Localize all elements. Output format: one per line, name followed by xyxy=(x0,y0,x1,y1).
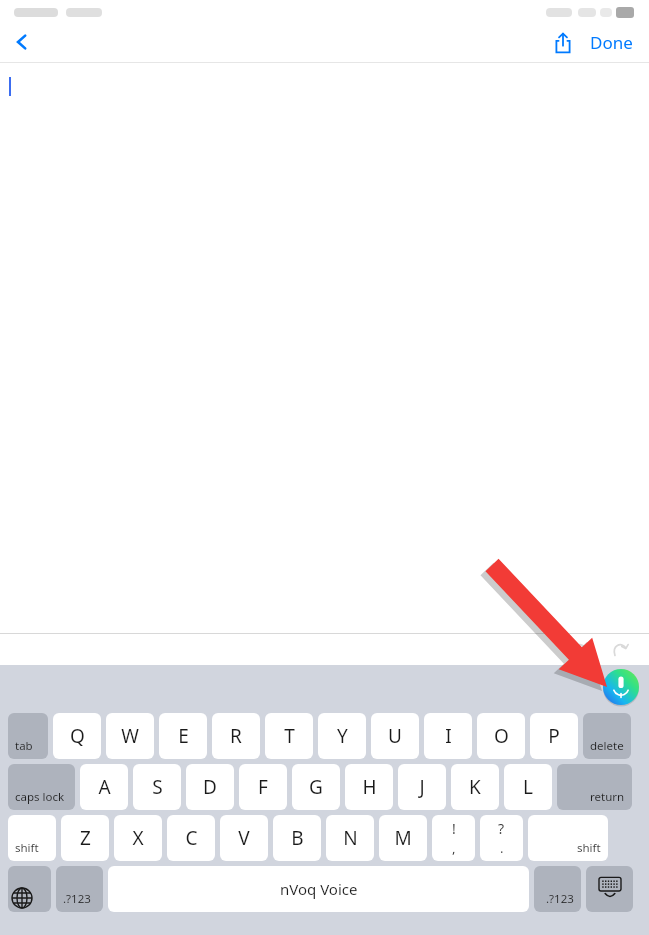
staticText: nVoq Voice xyxy=(280,879,358,899)
staticText: O xyxy=(494,723,509,749)
staticText: shift xyxy=(577,840,601,856)
button[interactable]: .?123 xyxy=(56,866,103,912)
button[interactable]: Q xyxy=(53,713,101,759)
staticText: Done xyxy=(590,31,633,54)
button[interactable]: shift xyxy=(8,815,56,861)
button[interactable]: B xyxy=(273,815,321,861)
staticText: I xyxy=(445,723,452,749)
button[interactable]: J xyxy=(398,764,446,810)
button[interactable]: Redo xyxy=(605,635,635,665)
staticText: G xyxy=(309,774,323,800)
staticText: P xyxy=(548,723,560,749)
button[interactable]: Y xyxy=(318,713,366,759)
staticText: K xyxy=(469,774,481,800)
button[interactable]: delete xyxy=(583,713,631,759)
button[interactable]: P xyxy=(530,713,578,759)
button[interactable]: K xyxy=(451,764,499,810)
button[interactable]: I xyxy=(424,713,472,759)
button[interactable]: H xyxy=(345,764,393,810)
button[interactable]: O xyxy=(477,713,525,759)
staticText: shift xyxy=(15,840,39,856)
staticText: return xyxy=(590,789,625,805)
staticText: T xyxy=(284,723,295,749)
button[interactable]: X xyxy=(114,815,162,861)
button[interactable]: caps lock xyxy=(8,764,75,810)
staticText: N xyxy=(343,825,358,851)
staticText: .?123 xyxy=(546,891,574,907)
staticText: X xyxy=(132,825,144,851)
staticText: M xyxy=(394,825,412,851)
button[interactable]: W xyxy=(106,713,154,759)
button[interactable]: G xyxy=(292,764,340,810)
staticText: J xyxy=(419,774,425,800)
staticText: S xyxy=(152,774,163,800)
button[interactable]: Change keyboard language xyxy=(8,866,51,912)
button[interactable]: tab xyxy=(8,713,48,759)
button[interactable]: return xyxy=(557,764,632,810)
button[interactable]: R xyxy=(212,713,260,759)
staticText: caps lock xyxy=(15,789,65,805)
button[interactable]: N xyxy=(326,815,374,861)
staticText: A xyxy=(98,774,111,800)
staticText: U xyxy=(388,723,402,749)
staticText: D xyxy=(203,774,217,800)
button[interactable]: nVoq Voice dictation xyxy=(603,669,639,705)
button[interactable]: Done xyxy=(586,25,637,60)
staticText: H xyxy=(362,774,377,800)
staticText: Z xyxy=(80,825,91,851)
staticText: Y xyxy=(337,723,348,749)
button[interactable]: T xyxy=(265,713,313,759)
staticText: W xyxy=(121,723,139,749)
staticText: , xyxy=(452,839,456,857)
button[interactable]: F xyxy=(239,764,287,810)
other: Hide keyboard xyxy=(586,866,633,912)
other: Change keyboard language xyxy=(8,866,51,912)
staticText: C xyxy=(185,825,198,851)
button[interactable]: ! xyxy=(432,815,475,861)
button[interactable]: M xyxy=(379,815,427,861)
staticText: .?123 xyxy=(63,891,91,907)
staticText: ? xyxy=(498,819,505,838)
button[interactable]: S xyxy=(133,764,181,810)
button[interactable]: ? xyxy=(480,815,523,861)
staticText: B xyxy=(291,825,304,851)
staticText: Q xyxy=(70,723,85,749)
button[interactable]: .?123 xyxy=(534,866,581,912)
staticText: F xyxy=(258,774,268,800)
button[interactable]: Z xyxy=(61,815,109,861)
staticText: L xyxy=(523,774,533,800)
button[interactable]: Hide keyboard xyxy=(586,866,633,912)
button[interactable]: C xyxy=(167,815,215,861)
button[interactable]: D xyxy=(186,764,234,810)
button[interactable]: L xyxy=(504,764,552,810)
staticText: R xyxy=(230,723,242,749)
button[interactable]: Share xyxy=(546,26,580,60)
staticText: E xyxy=(178,723,189,749)
staticText: tab xyxy=(15,738,33,754)
button[interactable]: U xyxy=(371,713,419,759)
button[interactable]: shift xyxy=(528,815,608,861)
button[interactable]: Undo xyxy=(565,635,595,665)
button[interactable]: nVoq Voice xyxy=(108,866,529,912)
button[interactable]: Back xyxy=(4,24,40,60)
staticText: delete xyxy=(590,738,624,754)
button[interactable]: E xyxy=(159,713,207,759)
button[interactable]: A xyxy=(80,764,128,810)
button[interactable]: V xyxy=(220,815,268,861)
staticText: . xyxy=(500,839,504,857)
staticText: V xyxy=(238,825,250,851)
staticText: ! xyxy=(452,819,456,838)
